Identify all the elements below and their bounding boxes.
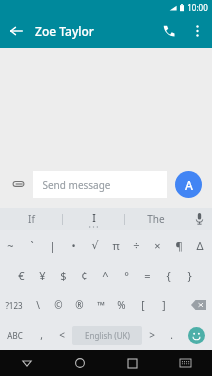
staticText: ABC (7, 330, 23, 341)
staticText: ¢ (81, 268, 88, 283)
button[interactable]: ¶ (168, 230, 189, 260)
staticText: ^ (102, 268, 109, 283)
button[interactable]: The (125, 208, 186, 230)
button[interactable]: ° (116, 260, 137, 290)
staticText: Δ (196, 238, 204, 253)
staticText: A (185, 177, 193, 193)
button[interactable]: | (42, 230, 63, 260)
staticText: English (UK) (85, 330, 130, 341)
button[interactable]: I (63, 208, 124, 230)
button[interactable]: ` (21, 230, 42, 260)
staticText: | (49, 238, 56, 253)
staticText: Zoe Taylor (35, 23, 94, 39)
staticText: © (54, 298, 63, 312)
button[interactable]: If (0, 208, 62, 230)
button[interactable]: Back (0, 350, 53, 376)
staticText: ?123 (5, 300, 23, 311)
button[interactable]: Attach (6, 172, 30, 196)
staticText: If (28, 212, 35, 226)
staticText: 10:00 (187, 2, 208, 13)
button[interactable]: More options (184, 18, 210, 44)
staticText: The (147, 212, 165, 226)
button[interactable]: Delete (184, 290, 212, 320)
button[interactable]: \ (27, 290, 48, 320)
button[interactable]: π (105, 230, 126, 260)
button[interactable]: Call (154, 16, 184, 46)
staticText: I (92, 211, 96, 225)
staticText: √ (91, 239, 99, 252)
button[interactable]: ?123 (0, 290, 27, 320)
button[interactable]: Send message (33, 171, 167, 198)
staticText: \ (36, 298, 40, 312)
button[interactable]: Δ (189, 230, 210, 260)
staticText: ¶ (175, 238, 183, 253)
staticText: ¥ (39, 268, 46, 283)
staticText: ~ (7, 238, 14, 253)
staticText: % (117, 298, 126, 312)
button[interactable]: ~ (0, 230, 21, 260)
staticText: = (144, 268, 151, 283)
staticText: ™ (97, 298, 105, 312)
button[interactable]: . (162, 320, 180, 350)
button[interactable]: Next (142, 320, 162, 350)
button[interactable]: ÷ (126, 230, 147, 260)
button[interactable]: ] (153, 290, 174, 320)
button[interactable]: Recents (106, 350, 159, 376)
button[interactable]: ABC (0, 320, 30, 350)
button[interactable]: Emoji (180, 320, 212, 350)
button[interactable]: ¢ (74, 260, 95, 290)
staticText: . (170, 328, 173, 342)
button[interactable]: ¥ (32, 260, 53, 290)
staticText: } (187, 268, 192, 283)
button[interactable]: Home (53, 350, 106, 376)
staticText: € (18, 268, 25, 283)
button[interactable]: { (158, 260, 179, 290)
button[interactable]: Voice input (186, 208, 212, 230)
staticText: ] (162, 298, 166, 312)
button[interactable]: , (30, 320, 52, 350)
button[interactable]: € (11, 260, 32, 290)
button[interactable]: ™ (90, 290, 111, 320)
staticText: ÷ (133, 238, 140, 253)
button[interactable]: English (UK) (72, 326, 142, 345)
button[interactable]: ^ (95, 260, 116, 290)
staticText: < (59, 328, 65, 342)
button[interactable]: } (179, 260, 200, 290)
button[interactable]: = (137, 260, 158, 290)
staticText: • (71, 238, 76, 253)
button[interactable]: $ (53, 260, 74, 290)
button[interactable]: ® (69, 290, 90, 320)
staticText: ° (124, 268, 129, 283)
button[interactable]: Switch keyboard (159, 350, 212, 376)
staticText: Send message (42, 178, 111, 192)
staticText: ` (30, 238, 34, 253)
button[interactable]: Previous (52, 320, 72, 350)
button[interactable]: Back (0, 15, 32, 47)
button[interactable]: √ (84, 230, 105, 260)
button[interactable]: % (111, 290, 132, 320)
staticText: > (149, 328, 155, 342)
staticText: $ (60, 268, 67, 283)
button[interactable]: © (48, 290, 69, 320)
button[interactable]: Send (175, 171, 202, 198)
button[interactable]: × (147, 230, 168, 260)
staticText: × (154, 238, 161, 253)
staticText: , (40, 328, 43, 342)
staticText: ® (75, 298, 84, 312)
staticText: π (112, 238, 120, 253)
staticText: { (166, 268, 171, 283)
button[interactable]: [ (132, 290, 153, 320)
staticText: [ (141, 298, 145, 312)
button[interactable]: • (63, 230, 84, 260)
